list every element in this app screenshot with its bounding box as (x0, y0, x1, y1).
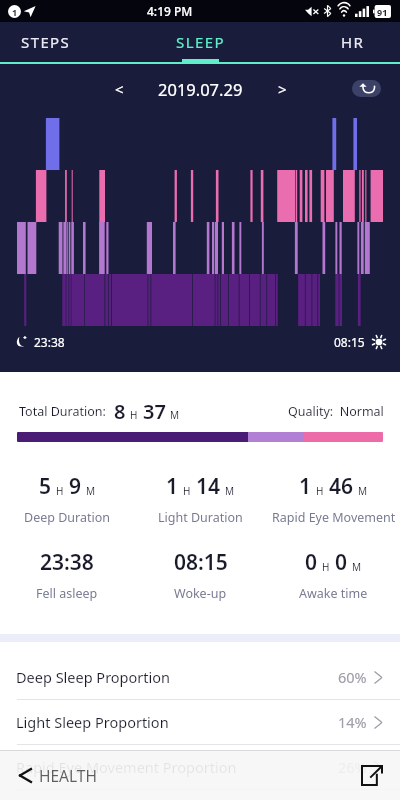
staticText: Rapid Eye Movement Proportion (16, 757, 237, 777)
staticText: 8 (114, 398, 126, 425)
staticText: H (322, 560, 330, 574)
button[interactable]: Deep Sleep Proportion (0, 655, 400, 700)
button[interactable]: STEPS (0, 22, 134, 62)
staticText: 08:15 (334, 334, 365, 350)
button[interactable]: Share (356, 759, 388, 791)
staticText: 5 (39, 472, 52, 501)
staticText: H (183, 484, 191, 498)
staticText: 46 (329, 472, 354, 501)
staticText: M (86, 484, 96, 498)
staticText: 37 (143, 398, 166, 425)
staticText: 14 (196, 472, 221, 501)
staticText: 9 (69, 472, 82, 501)
staticText: Quality: Normal (288, 403, 384, 420)
staticText: 23:38 (34, 334, 65, 350)
staticText: 26% (338, 757, 367, 777)
staticText: Rapid Eye Movement (272, 509, 396, 526)
button[interactable]: Rapid Eye Movement Proportion (0, 745, 400, 790)
staticText: Deep Sleep Proportion (16, 667, 171, 687)
staticText: Woke-up (174, 585, 227, 602)
staticText: 23:38 (40, 548, 94, 577)
staticText: 1 (12, 6, 18, 18)
staticText: 1 (299, 472, 312, 501)
staticText: 1 (166, 472, 179, 501)
staticText: HEALTH (39, 765, 97, 786)
staticText: H (56, 484, 64, 498)
staticText: SLEEP (176, 32, 225, 52)
staticText: M (170, 408, 180, 422)
staticText: H (130, 408, 138, 422)
staticText: 0 (305, 548, 318, 577)
staticText: 0 (335, 548, 348, 577)
staticText: Deep Duration (24, 509, 110, 526)
staticText: M (358, 484, 368, 498)
button[interactable]: Light Sleep Proportion (0, 700, 400, 745)
button[interactable]: HR (267, 22, 400, 62)
staticText: 14% (338, 712, 367, 732)
staticText: > (278, 79, 287, 99)
staticText: 60% (338, 667, 367, 687)
staticText: Light Sleep Proportion (16, 712, 169, 732)
staticText: < (115, 79, 124, 99)
staticText: 08:15 (174, 548, 228, 577)
staticText: 2019.07.29 (158, 78, 243, 100)
staticText: Light Duration (158, 509, 243, 526)
staticText: 4:19 PM (147, 3, 193, 19)
button[interactable]: Next day (265, 72, 299, 106)
staticText: Total Duration: (19, 403, 106, 420)
staticText: H (316, 484, 324, 498)
staticText: HR (341, 32, 365, 52)
button[interactable]: HEALTH (17, 759, 99, 792)
staticText: 91 (377, 6, 388, 18)
button[interactable]: Previous day (102, 72, 136, 106)
staticText: STEPS (21, 32, 71, 52)
button[interactable]: SLEEP (134, 22, 267, 62)
staticText: Fell asleep (36, 585, 98, 602)
button[interactable]: Undo (352, 80, 381, 97)
staticText: Awake time (299, 585, 368, 602)
staticText: M (225, 484, 235, 498)
staticText: M (352, 560, 362, 574)
